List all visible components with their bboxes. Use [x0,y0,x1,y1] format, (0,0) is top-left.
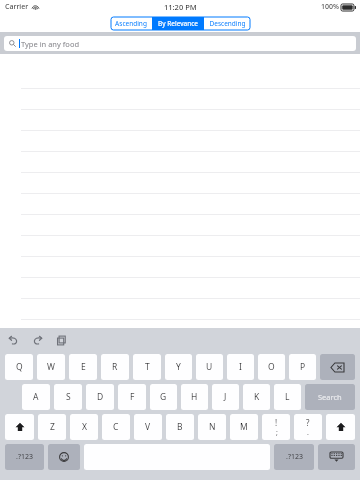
staticText: P [300,361,306,373]
staticText: 100% [321,2,339,12]
staticText: A [33,391,39,403]
button[interactable]: B [166,414,194,440]
staticText: Z [50,421,55,433]
staticText: K [254,391,260,403]
button[interactable]: N [198,414,226,440]
staticText: Search [318,392,342,402]
button[interactable]: Emoji [48,444,80,470]
button[interactable] [0,173,360,194]
button[interactable]: K [243,384,270,410]
staticText: J [224,391,227,403]
staticText: L [285,391,290,403]
button[interactable] [0,299,360,320]
staticText: V [145,421,151,433]
staticText: ? [306,417,310,428]
button[interactable]: Ascending [110,17,152,30]
staticText: T [145,361,150,373]
button[interactable]: .?123 [274,444,314,470]
staticText: F [130,391,135,403]
button[interactable] [0,215,360,236]
button[interactable] [0,89,360,110]
button[interactable]: S [54,384,82,410]
staticText: C [113,421,119,433]
button[interactable] [0,278,360,299]
button[interactable]: O [258,354,285,380]
button[interactable] [0,68,360,89]
button[interactable]: Search [305,384,355,410]
button[interactable]: Y [165,354,192,380]
button[interactable]: Hide keyboard [318,444,355,470]
button[interactable]: W [37,354,65,380]
staticText: .?123 [16,452,33,462]
button[interactable]: Undo [6,333,20,347]
button[interactable]: H [181,384,208,410]
button[interactable] [0,194,360,215]
staticText: R [112,361,118,373]
button[interactable]: M [230,414,258,440]
button[interactable]: Q [5,354,33,380]
button[interactable]: G [150,384,177,410]
staticText: Type in any food [21,39,80,49]
button[interactable]: J [212,384,239,410]
staticText: M [240,421,248,433]
button[interactable]: Redo [30,333,44,347]
staticText: ! [275,417,278,428]
staticText: O [268,361,275,373]
button[interactable]: Backspace [320,354,355,380]
button[interactable]: R [101,354,129,380]
button[interactable] [0,152,360,173]
button[interactable]: I [227,354,254,380]
staticText: Q [16,361,23,373]
staticText: B [177,421,183,433]
button[interactable]: A [22,384,50,410]
staticText: X [82,421,87,433]
button[interactable]: ! [262,414,290,440]
staticText: Carrier [5,2,29,12]
button[interactable]: V [134,414,162,440]
staticText: S [66,391,71,403]
staticText: Y [176,361,181,373]
button[interactable] [0,236,360,257]
staticText: H [191,391,198,403]
staticText: W [47,361,55,373]
staticText: U [206,361,213,373]
button[interactable]: P [289,354,316,380]
button[interactable]: By Relevance [153,17,203,30]
button[interactable]: Type in any food [4,36,356,51]
button[interactable]: T [133,354,161,380]
button[interactable] [0,110,360,131]
staticText: I [239,361,242,373]
button[interactable]: Shift [5,414,34,440]
staticText: E [81,361,86,373]
staticText: G [160,391,167,403]
button[interactable]: D [86,384,114,410]
staticText: .?123 [286,452,303,462]
button[interactable]: L [274,384,301,410]
staticText: By Relevance [158,19,198,28]
button[interactable]: ? [294,414,322,440]
button[interactable]: E [69,354,97,380]
button[interactable]: Z [38,414,66,440]
button[interactable]: Shift [326,414,355,440]
staticText: . [307,428,309,438]
button[interactable] [0,257,360,278]
button[interactable]: U [196,354,223,380]
button[interactable]: C [102,414,130,440]
staticText: ; [276,428,278,438]
staticText: Ascending [115,19,147,28]
button[interactable] [0,131,360,152]
staticText: Descending [209,19,246,28]
button[interactable]: X [70,414,98,440]
staticText: D [97,391,104,403]
button[interactable]: F [118,384,146,410]
staticText: 11:20 PM [164,2,197,12]
button[interactable]: Descending [204,17,251,30]
staticText: N [209,421,216,433]
button[interactable]: Paste [54,333,68,347]
button[interactable]: .?123 [5,444,44,470]
